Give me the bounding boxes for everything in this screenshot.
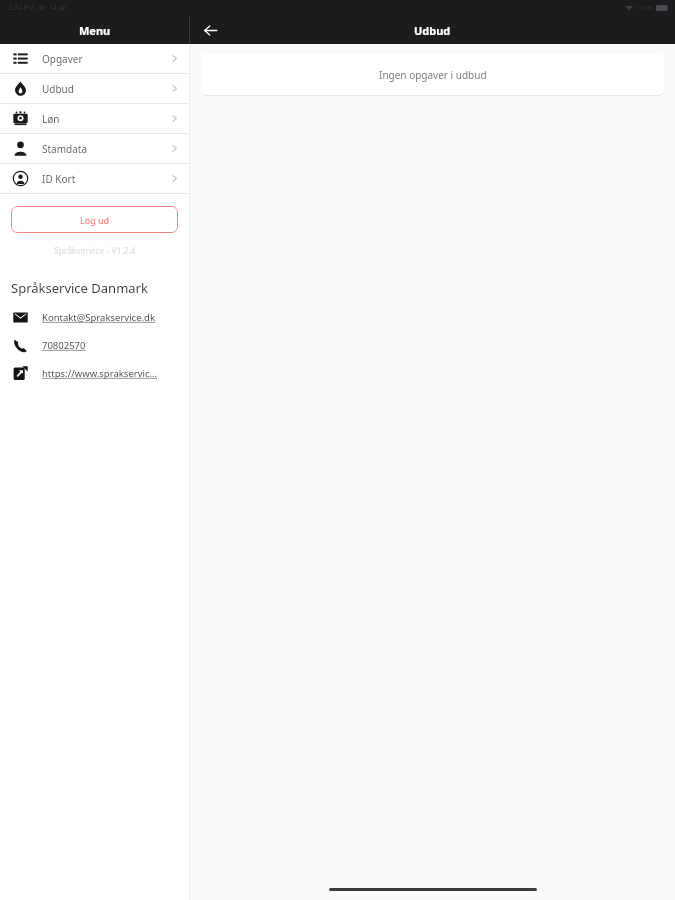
staticText: Kontakt@Sprakservice.dk: [42, 311, 155, 324]
staticText: Log ud: [80, 214, 110, 226]
staticText: Udbud: [414, 23, 451, 38]
staticText: Udbud: [42, 82, 171, 96]
staticText: 70802570: [42, 339, 86, 352]
staticText: ID Kort: [42, 172, 171, 186]
staticText: https://www.sprakservic...: [42, 367, 158, 380]
staticText: Opgaver: [42, 52, 171, 66]
button[interactable]: Back: [196, 16, 224, 44]
button[interactable]: https://www.sprakservic...: [13, 366, 181, 381]
button[interactable]: Ingen opgaver i udbud: [201, 54, 664, 95]
staticText: Stamdata: [42, 142, 171, 156]
staticText: Språkservice - V1.2.4: [54, 245, 136, 257]
staticText: Språkservice Danmark: [11, 279, 148, 297]
button[interactable]: Kontakt@Sprakservice.dk: [13, 310, 181, 325]
button[interactable]: Løn: [0, 104, 189, 134]
button[interactable]: 70802570: [13, 338, 181, 353]
button[interactable]: Log ud: [11, 206, 178, 233]
staticText: 2:34 PM lør 14 jul: [8, 3, 67, 13]
button[interactable]: Stamdata: [0, 134, 189, 164]
button[interactable]: Udbud: [0, 74, 189, 104]
staticText: 100 %: [636, 4, 653, 12]
staticText: Løn: [42, 112, 171, 126]
button[interactable]: Opgaver: [0, 44, 189, 74]
staticText: Menu: [79, 23, 111, 38]
staticText: Ingen opgaver i udbud: [379, 68, 487, 82]
button[interactable]: ID Kort: [0, 164, 189, 194]
